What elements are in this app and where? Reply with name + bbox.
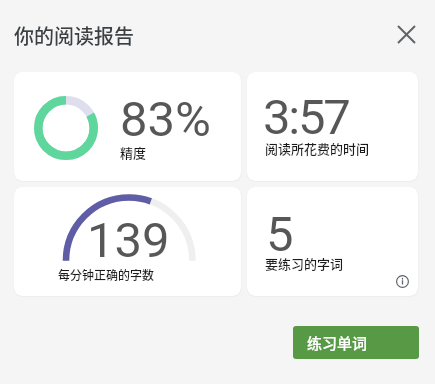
staticText: 练习单词	[307, 332, 368, 354]
staticText: 3:57	[263, 89, 349, 146]
staticText: 你的阅读报告	[14, 21, 134, 50]
staticText: 139	[87, 212, 170, 269]
staticText: 精度	[120, 143, 147, 162]
staticText: 5	[266, 206, 294, 263]
button[interactable]: 练习单词	[293, 326, 419, 359]
staticText: 要练习的字词	[265, 254, 344, 273]
staticText: 阅读所花费的时间	[265, 139, 370, 158]
button[interactable]: Info	[389, 268, 415, 294]
staticText: 每分钟正确的字数	[58, 266, 155, 283]
button[interactable]: Close	[386, 14, 426, 54]
staticText: 83%	[120, 91, 211, 148]
